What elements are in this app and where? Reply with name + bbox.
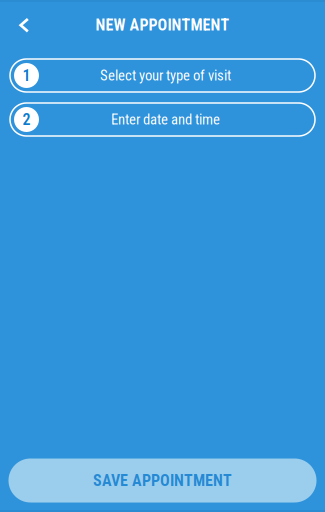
button[interactable]: SAVE APPOINTMENT: [8, 458, 316, 502]
staticText: Enter date and time: [111, 111, 220, 128]
button[interactable]: Enter date and time: [10, 103, 315, 136]
button[interactable]: Back: [8, 9, 40, 41]
button[interactable]: Select your type of visit: [10, 59, 315, 92]
staticText: SAVE APPOINTMENT: [93, 471, 232, 490]
staticText: NEW APPOINTMENT: [95, 16, 229, 34]
staticText: 1: [22, 66, 30, 85]
staticText: Select your type of visit: [100, 67, 231, 84]
staticText: 2: [22, 110, 30, 129]
